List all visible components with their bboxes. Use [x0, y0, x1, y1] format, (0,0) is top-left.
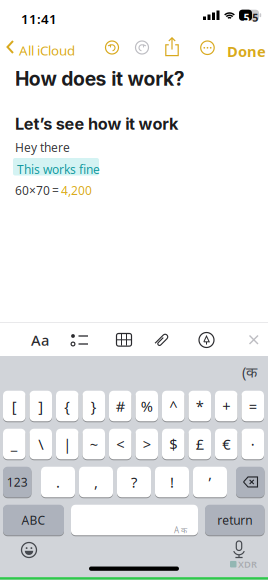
staticText: !: [170, 472, 174, 492]
staticText: >: [143, 434, 151, 454]
staticText: 11:41: [21, 10, 57, 28]
staticText: Hey there: [15, 139, 70, 155]
staticText: 5: [243, 11, 249, 25]
button[interactable]: ~: [82, 428, 105, 460]
button[interactable]: |: [56, 428, 78, 460]
button[interactable]: ?: [117, 466, 151, 498]
button[interactable]: £: [188, 428, 211, 460]
staticText: 123: [7, 474, 28, 490]
button[interactable]: Undo: [104, 39, 120, 55]
button[interactable]: Emoji: [21, 542, 36, 557]
button[interactable]: Table: [116, 333, 131, 346]
button[interactable]: ^: [162, 390, 184, 422]
staticText: £: [196, 434, 204, 454]
button[interactable]: Attach: [153, 331, 171, 349]
button[interactable]: 123: [3, 466, 31, 498]
button[interactable]: .: [41, 466, 75, 498]
staticText: ABC: [21, 512, 45, 528]
button[interactable]: ’: [193, 466, 227, 498]
button[interactable]: ,: [79, 466, 113, 498]
staticText: {: [64, 396, 70, 416]
staticText: }: [91, 396, 97, 416]
staticText: *: [196, 396, 204, 416]
button[interactable]: *: [188, 390, 211, 422]
button[interactable]: #: [109, 390, 131, 422]
staticText: 60×70 =: [15, 182, 61, 198]
button[interactable]: <: [109, 428, 131, 460]
staticText: A क: [174, 525, 187, 535]
button[interactable]: !: [155, 466, 189, 498]
staticText: Aa: [31, 330, 49, 350]
button[interactable]: Dictate: [232, 541, 246, 558]
staticText: [: [12, 396, 17, 416]
staticText: ·: [251, 434, 255, 454]
button[interactable]: \: [29, 428, 52, 460]
button[interactable]: _: [3, 428, 25, 460]
staticText: Let’s see how it work: [15, 114, 178, 134]
staticText: All iCloud: [19, 41, 75, 59]
button[interactable]: ·: [241, 428, 264, 460]
staticText: %: [141, 396, 153, 416]
button[interactable]: $: [162, 428, 184, 460]
staticText: Done: [227, 41, 266, 61]
staticText: \: [38, 434, 43, 454]
staticText: This works fine: [17, 161, 100, 177]
staticText: How does it work?: [15, 67, 185, 90]
button[interactable]: Dismiss keyboard: [249, 335, 258, 344]
staticText: ?: [131, 472, 137, 492]
button[interactable]: >: [135, 428, 158, 460]
button[interactable]: All iCloud: [0, 0, 80, 26]
button[interactable]: Format: [28, 330, 52, 350]
button[interactable]: Space: [71, 504, 198, 536]
staticText: ^: [169, 396, 177, 416]
staticText: =: [249, 396, 257, 416]
staticText: <: [116, 434, 124, 454]
button[interactable]: ]: [29, 390, 52, 422]
button[interactable]: [: [3, 390, 25, 422]
staticText: |: [63, 434, 71, 454]
button[interactable]: {: [56, 390, 78, 422]
staticText: €: [222, 434, 230, 454]
button[interactable]: %: [135, 390, 158, 422]
button[interactable]: return: [205, 504, 264, 536]
button[interactable]: Share: [163, 37, 181, 57]
staticText: .: [56, 472, 60, 492]
staticText: +: [222, 396, 230, 416]
button[interactable]: }: [82, 390, 105, 422]
button[interactable]: +: [215, 390, 237, 422]
staticText: return: [217, 512, 252, 528]
staticText: 4,200: [61, 182, 92, 198]
button[interactable]: €: [215, 428, 237, 460]
staticText: ]: [38, 396, 43, 416]
button[interactable]: Redo: [134, 39, 150, 55]
button[interactable]: ABC: [3, 504, 64, 536]
staticText: XDR: [238, 558, 257, 570]
staticText: ’: [208, 472, 211, 492]
staticText: ,: [94, 472, 98, 492]
button[interactable]: Checklist: [70, 332, 89, 348]
button[interactable]: Done: [227, 41, 266, 61]
staticText: 5: [252, 11, 258, 25]
button[interactable]: =: [241, 390, 264, 422]
staticText: (क: [242, 362, 257, 381]
button[interactable]: Delete: [236, 466, 264, 498]
staticText: ~: [90, 434, 98, 454]
staticText: $: [169, 434, 177, 454]
button[interactable]: Markup: [199, 332, 214, 347]
staticText: _: [11, 434, 18, 454]
staticText: #: [116, 396, 125, 416]
button[interactable]: More: [199, 40, 215, 56]
